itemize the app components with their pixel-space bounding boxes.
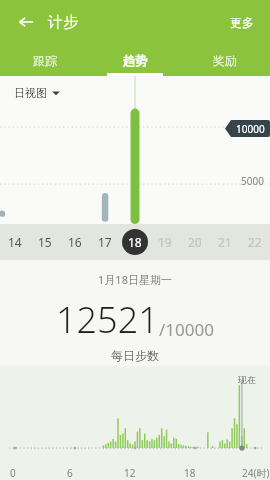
button[interactable]: 18 (120, 224, 150, 260)
staticText: 跟踪 (33, 53, 57, 68)
staticText: 1月18日星期一 (98, 272, 172, 287)
button[interactable]: 趋势 (90, 44, 180, 76)
staticText: 16 (68, 234, 82, 250)
staticText: 17 (98, 234, 112, 250)
staticText: 20 (188, 234, 202, 250)
button[interactable]: 跟踪 (0, 44, 90, 76)
staticText: 18 (128, 234, 142, 250)
button[interactable]: 更多 (226, 11, 258, 34)
staticText: 15 (38, 234, 52, 250)
staticText: 日视图 (14, 86, 47, 100)
staticText: 趋势 (123, 53, 147, 68)
button[interactable]: 21 (210, 224, 240, 260)
staticText: 12521 (56, 295, 159, 344)
staticText: 现在 (238, 374, 256, 385)
button[interactable]: Back (12, 8, 40, 36)
staticText: 10000 (236, 122, 265, 136)
button[interactable]: 22 (240, 224, 270, 260)
staticText: 21 (218, 234, 232, 250)
staticText: 19 (158, 234, 172, 250)
staticText: /10000 (159, 318, 214, 341)
staticText: 14 (8, 234, 22, 250)
button[interactable]: 15 (30, 224, 60, 260)
button[interactable]: 19 (150, 224, 180, 260)
staticText: 0 (10, 466, 16, 480)
staticText: 12 (124, 466, 136, 480)
staticText: 奖励 (213, 53, 237, 68)
button[interactable]: 17 (90, 224, 120, 260)
button[interactable]: 日视图 (14, 86, 60, 100)
button[interactable]: 14 (0, 224, 30, 260)
button[interactable]: 16 (60, 224, 90, 260)
staticText: 计步 (48, 13, 78, 32)
button[interactable]: 20 (180, 224, 210, 260)
staticText: 22 (248, 234, 262, 250)
staticText: 更多 (230, 15, 254, 30)
staticText: 5000 (241, 174, 264, 188)
staticText: 18 (184, 466, 196, 480)
staticText: 每日步数 (111, 348, 159, 363)
staticText: 24(时) (242, 466, 270, 480)
staticText: 6 (67, 466, 73, 480)
button[interactable]: 奖励 (180, 44, 270, 76)
